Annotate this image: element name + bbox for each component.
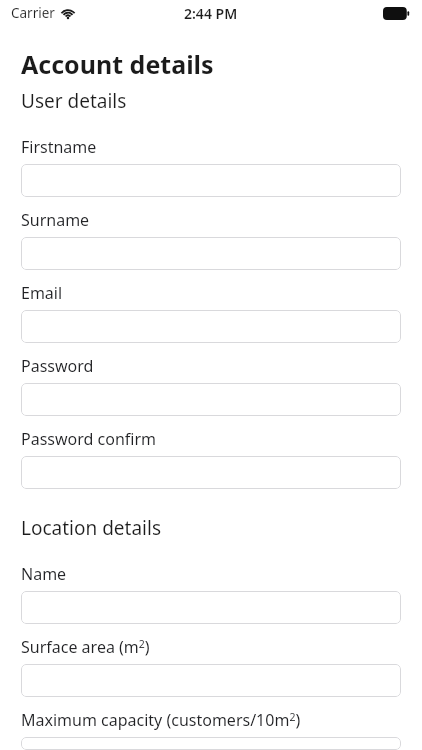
staticText: Email	[21, 282, 63, 304]
button[interactable]	[21, 591, 401, 624]
staticText: Firstname	[21, 136, 97, 158]
staticText: Location details	[21, 515, 161, 541]
button[interactable]	[21, 737, 401, 750]
button[interactable]	[21, 456, 401, 489]
staticText: Password	[21, 355, 94, 377]
staticText: 2:44 PM	[184, 4, 238, 23]
staticText: User details	[21, 88, 127, 114]
button[interactable]	[21, 164, 401, 197]
staticText: Account details	[21, 47, 214, 81]
button[interactable]	[21, 310, 401, 343]
button[interactable]	[21, 237, 401, 270]
staticText: Maximum capacity (customers/10m2)	[21, 709, 301, 731]
staticText: Carrier	[11, 4, 55, 22]
staticText: Name	[21, 563, 67, 585]
staticText: Password confirm	[21, 428, 156, 450]
button[interactable]	[21, 664, 401, 697]
other: Wi-Fi	[60, 7, 76, 19]
other: Battery full	[383, 7, 410, 20]
staticText: Surname	[21, 209, 90, 231]
staticText: Surface area (m2)	[21, 636, 150, 658]
button[interactable]	[21, 383, 401, 416]
